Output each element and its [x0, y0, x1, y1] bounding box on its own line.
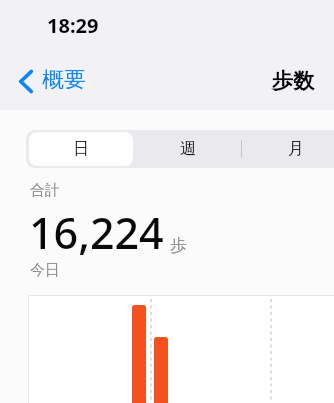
staticText: 歩: [170, 235, 187, 256]
staticText: 歩数: [272, 68, 314, 94]
staticText: 日: [73, 139, 89, 159]
staticText: 今日: [30, 261, 60, 280]
staticText: 概要: [42, 66, 86, 94]
staticText: 合計: [30, 181, 60, 200]
button[interactable]: 月: [244, 132, 334, 166]
staticText: 週: [180, 139, 196, 159]
other: 戻る: [19, 70, 32, 93]
staticText: 月: [288, 139, 304, 159]
button[interactable]: 日: [29, 132, 133, 166]
staticText: 16,224: [29, 203, 164, 262]
button[interactable]: 週: [136, 132, 240, 166]
button[interactable]: 戻る: [12, 62, 94, 100]
staticText: 18:29: [47, 12, 99, 39]
